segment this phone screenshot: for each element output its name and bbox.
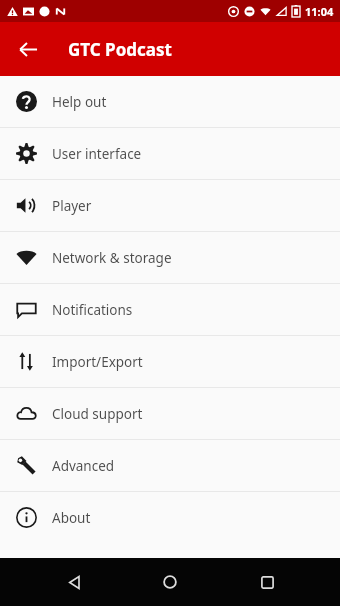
button[interactable]: Advanced bbox=[0, 440, 340, 491]
button[interactable]: Help out bbox=[0, 76, 340, 127]
staticText: Import/Export bbox=[52, 353, 143, 371]
staticText: 11:04 bbox=[305, 4, 334, 19]
button[interactable]: Home bbox=[147, 559, 193, 605]
button[interactable]: About bbox=[0, 492, 340, 543]
button[interactable]: User interface bbox=[0, 128, 340, 179]
staticText: Cloud support bbox=[52, 405, 143, 423]
staticText: User interface bbox=[52, 145, 142, 163]
staticText: About bbox=[52, 509, 91, 527]
button[interactable]: Back bbox=[51, 559, 97, 605]
staticText: Player bbox=[52, 197, 92, 215]
button[interactable]: Cloud support bbox=[0, 388, 340, 439]
button[interactable]: Player bbox=[0, 180, 340, 231]
button[interactable]: Navigate up bbox=[8, 29, 48, 69]
staticText: GTC Podcast bbox=[68, 38, 172, 61]
button[interactable]: Notifications bbox=[0, 284, 340, 335]
staticText: Notifications bbox=[52, 301, 133, 319]
button[interactable]: Network & storage bbox=[0, 232, 340, 283]
staticText: Help out bbox=[52, 93, 107, 111]
button[interactable]: Import/Export bbox=[0, 336, 340, 387]
staticText: Advanced bbox=[52, 457, 115, 475]
button[interactable]: Recent apps bbox=[244, 559, 290, 605]
staticText: Network & storage bbox=[52, 249, 172, 267]
